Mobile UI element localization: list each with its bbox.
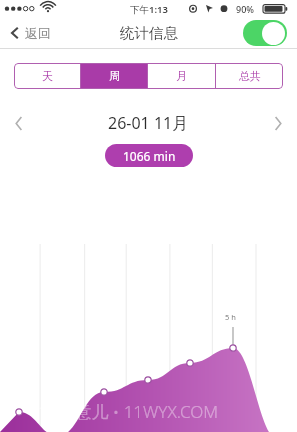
- staticText: 返回: [25, 25, 51, 41]
- staticText: 5 h: [225, 312, 236, 322]
- staticText: 下午1:13: [130, 3, 168, 16]
- staticText: 周: [109, 69, 120, 83]
- button[interactable]: 周: [81, 63, 147, 89]
- staticText: 天: [42, 69, 53, 83]
- staticText: 月: [176, 69, 187, 83]
- button[interactable]: 1066 min: [105, 144, 193, 167]
- staticText: 26-01 11月: [108, 112, 189, 134]
- button[interactable]: 月: [148, 63, 215, 89]
- button[interactable]: 总共: [216, 63, 283, 89]
- staticText: 11玩意儿 • 11WYX.COM: [38, 400, 219, 423]
- button[interactable]: Next period: [265, 111, 291, 135]
- staticText: 1066 min: [123, 148, 176, 164]
- staticText: 总共: [239, 69, 261, 83]
- button[interactable]: Previous period: [6, 111, 32, 135]
- staticText: 统计信息: [120, 24, 178, 42]
- staticText: 90%: [236, 3, 254, 15]
- button[interactable]: 返回: [6, 22, 55, 44]
- button[interactable]: Toggle statistics: [243, 20, 287, 46]
- button[interactable]: 天: [14, 63, 80, 89]
